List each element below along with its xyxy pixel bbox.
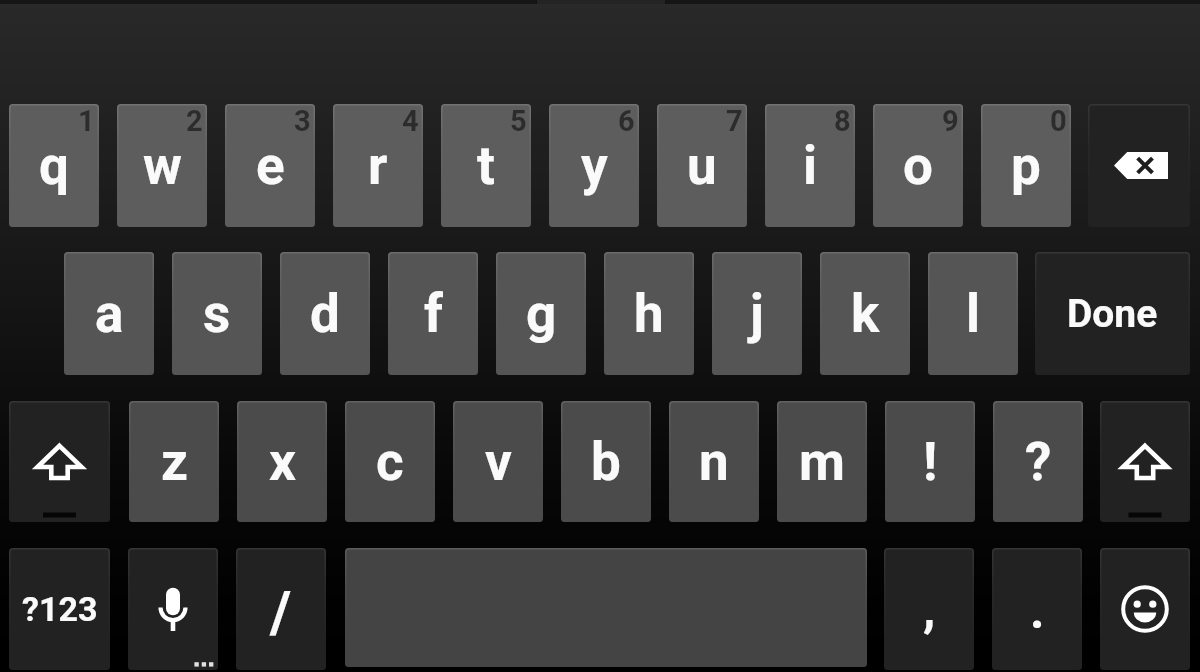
button[interactable]: a	[64, 252, 154, 375]
button[interactable]: w	[117, 104, 207, 227]
staticText: r	[368, 135, 388, 197]
staticText: h	[634, 283, 664, 345]
staticText: g	[526, 283, 557, 345]
button[interactable]: g	[496, 252, 586, 375]
button[interactable]: o	[873, 104, 963, 227]
button[interactable]: ?123	[9, 548, 110, 670]
button[interactable]: Shift	[9, 401, 110, 522]
button[interactable]: l	[928, 252, 1018, 375]
button[interactable]: h	[604, 252, 694, 375]
staticText: 1	[78, 104, 95, 138]
staticText: m	[799, 431, 845, 493]
staticText: 3	[294, 104, 311, 138]
staticText: s	[203, 283, 231, 345]
button[interactable]: j	[712, 252, 802, 375]
button[interactable]: q	[9, 104, 99, 227]
staticText: 6	[618, 104, 635, 138]
button[interactable]: s	[172, 252, 262, 375]
button[interactable]: /	[236, 548, 326, 670]
button[interactable]: n	[669, 401, 759, 522]
button[interactable]: e	[225, 104, 315, 227]
staticText: Done	[1067, 291, 1158, 337]
staticText: a	[95, 283, 124, 345]
button[interactable]: d	[280, 252, 370, 375]
staticText: b	[591, 431, 621, 493]
staticText: z	[161, 431, 188, 493]
staticText: 2	[186, 104, 203, 138]
staticText: 9	[942, 104, 959, 138]
button[interactable]: t	[441, 104, 531, 227]
button[interactable]: k	[820, 252, 910, 375]
button[interactable]: p	[981, 104, 1071, 227]
button[interactable]: b	[561, 401, 651, 522]
staticText: p	[1011, 135, 1041, 197]
staticText: i	[803, 135, 818, 197]
button[interactable]: r	[333, 104, 423, 227]
staticText: k	[851, 283, 880, 345]
staticText: 5	[510, 104, 527, 138]
button[interactable]: i	[765, 104, 855, 227]
button[interactable]: Backspace	[1088, 104, 1190, 227]
staticText: ?123	[22, 589, 98, 629]
button[interactable]: Shift	[1100, 401, 1190, 522]
button[interactable]: m	[777, 401, 867, 522]
button[interactable]: x	[237, 401, 327, 522]
button[interactable]: Done	[1035, 252, 1190, 375]
button[interactable]: z	[129, 401, 219, 522]
button[interactable]: ,	[884, 548, 974, 670]
staticText: v	[485, 431, 512, 493]
staticText: t	[477, 135, 495, 197]
staticText: j	[750, 283, 764, 345]
staticText: !	[923, 431, 938, 493]
staticText: c	[376, 431, 404, 493]
button[interactable]: f	[388, 252, 478, 375]
button[interactable]: ?	[993, 401, 1083, 522]
button[interactable]: Voice input	[128, 548, 218, 670]
staticText: .	[1030, 582, 1045, 641]
staticText: 0	[1050, 104, 1067, 138]
staticText: l	[966, 283, 981, 345]
staticText: u	[687, 135, 717, 197]
staticText: d	[310, 283, 340, 345]
staticText: q	[39, 135, 69, 197]
staticText: o	[903, 135, 933, 197]
staticText: y	[581, 135, 608, 197]
staticText: ,	[923, 580, 936, 639]
button[interactable]: c	[345, 401, 435, 522]
button[interactable]: .	[992, 548, 1082, 670]
staticText: /	[270, 579, 292, 646]
staticText: x	[269, 431, 296, 493]
button[interactable]: y	[549, 104, 639, 227]
staticText: n	[699, 431, 729, 493]
staticText: 7	[726, 104, 743, 138]
staticText: ?	[1025, 431, 1052, 493]
staticText: 8	[834, 104, 851, 138]
button[interactable]: !	[885, 401, 975, 522]
button[interactable]: Emoji	[1100, 548, 1190, 670]
button[interactable]: v	[453, 401, 543, 522]
staticText: 4	[402, 104, 419, 138]
staticText: f	[424, 283, 443, 345]
staticText: e	[256, 135, 285, 197]
button[interactable]: u	[657, 104, 747, 227]
staticText: w	[143, 135, 182, 197]
